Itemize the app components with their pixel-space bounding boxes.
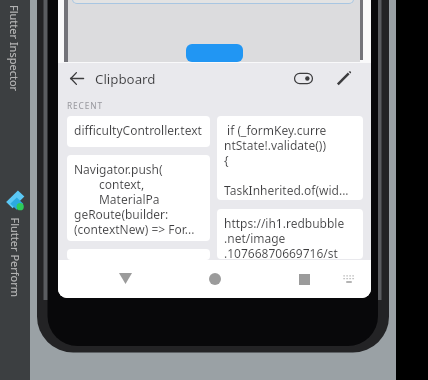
button[interactable]: if (_formKey.curre ntState!.validate()) … bbox=[217, 116, 363, 200]
staticText: https://ih1.redbubble .net/image .107668… bbox=[224, 215, 345, 259]
button[interactable]: Home bbox=[203, 267, 227, 291]
button[interactable]: https://ih1.redbubble .net/image .107668… bbox=[217, 209, 363, 259]
button[interactable]: Recents bbox=[292, 267, 316, 291]
staticText: Flutter Perform bbox=[7, 217, 22, 297]
staticText: if (_formKey.curre ntState!.validate()) … bbox=[224, 122, 349, 198]
button[interactable] bbox=[186, 44, 243, 62]
button[interactable]: Navigator.push( context, MaterialPa geRo… bbox=[67, 155, 210, 241]
staticText: Clipboard bbox=[95, 70, 156, 88]
button[interactable]: Back bbox=[113, 266, 137, 290]
staticText: Navigator.push( context, MaterialPa geRo… bbox=[74, 161, 195, 237]
staticText: RECENT bbox=[67, 100, 103, 111]
staticText: difficultyController.text bbox=[74, 122, 202, 138]
button[interactable]: Toggle dark mode bbox=[292, 63, 315, 93]
button[interactable]: Keyboard bbox=[337, 267, 361, 291]
staticText: Flutter Inspector bbox=[7, 5, 22, 92]
button[interactable]: Edit bbox=[333, 63, 355, 93]
button[interactable]: Back bbox=[64, 63, 89, 93]
button[interactable]: difficultyController.text bbox=[67, 116, 210, 147]
